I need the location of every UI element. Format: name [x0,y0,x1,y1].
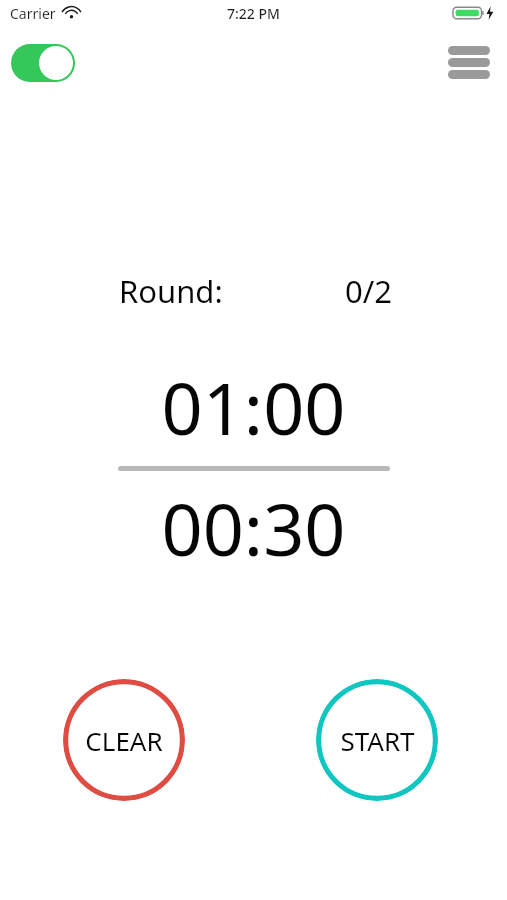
button[interactable]: START [316,679,438,801]
staticText: CLEAR [85,723,163,758]
button[interactable]: Toggle sound [11,44,75,82]
button[interactable]: CLEAR [63,679,185,801]
staticText: 0/2 [345,270,392,312]
staticText: 01:00 [0,358,507,456]
staticText: 7:22 PM [227,4,280,23]
staticText: Round: [119,270,223,312]
button[interactable]: Menu [447,42,491,82]
staticText: START [340,723,415,758]
staticText: 00:30 [0,479,507,577]
staticText: Carrier [10,4,56,23]
